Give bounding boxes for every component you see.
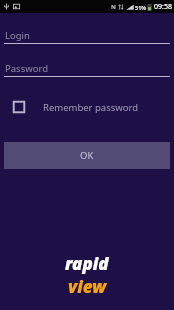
button[interactable]: OK <box>4 142 170 169</box>
button[interactable]: Password <box>0 60 174 77</box>
staticText: 51% <box>135 4 147 11</box>
staticText: N <box>111 3 116 11</box>
button[interactable]: Remember password <box>0 96 174 118</box>
staticText: Login <box>5 29 30 42</box>
staticText: Password <box>5 62 48 75</box>
other: Screenshot <box>13 3 20 10</box>
button[interactable]: Login <box>0 27 174 44</box>
staticText: rapid <box>65 252 109 275</box>
other: USB connected <box>3 3 10 10</box>
staticText: 09:58 <box>154 2 172 12</box>
staticText: OK <box>80 149 94 162</box>
staticText: Remember password <box>43 101 139 114</box>
staticText: view <box>68 275 107 298</box>
